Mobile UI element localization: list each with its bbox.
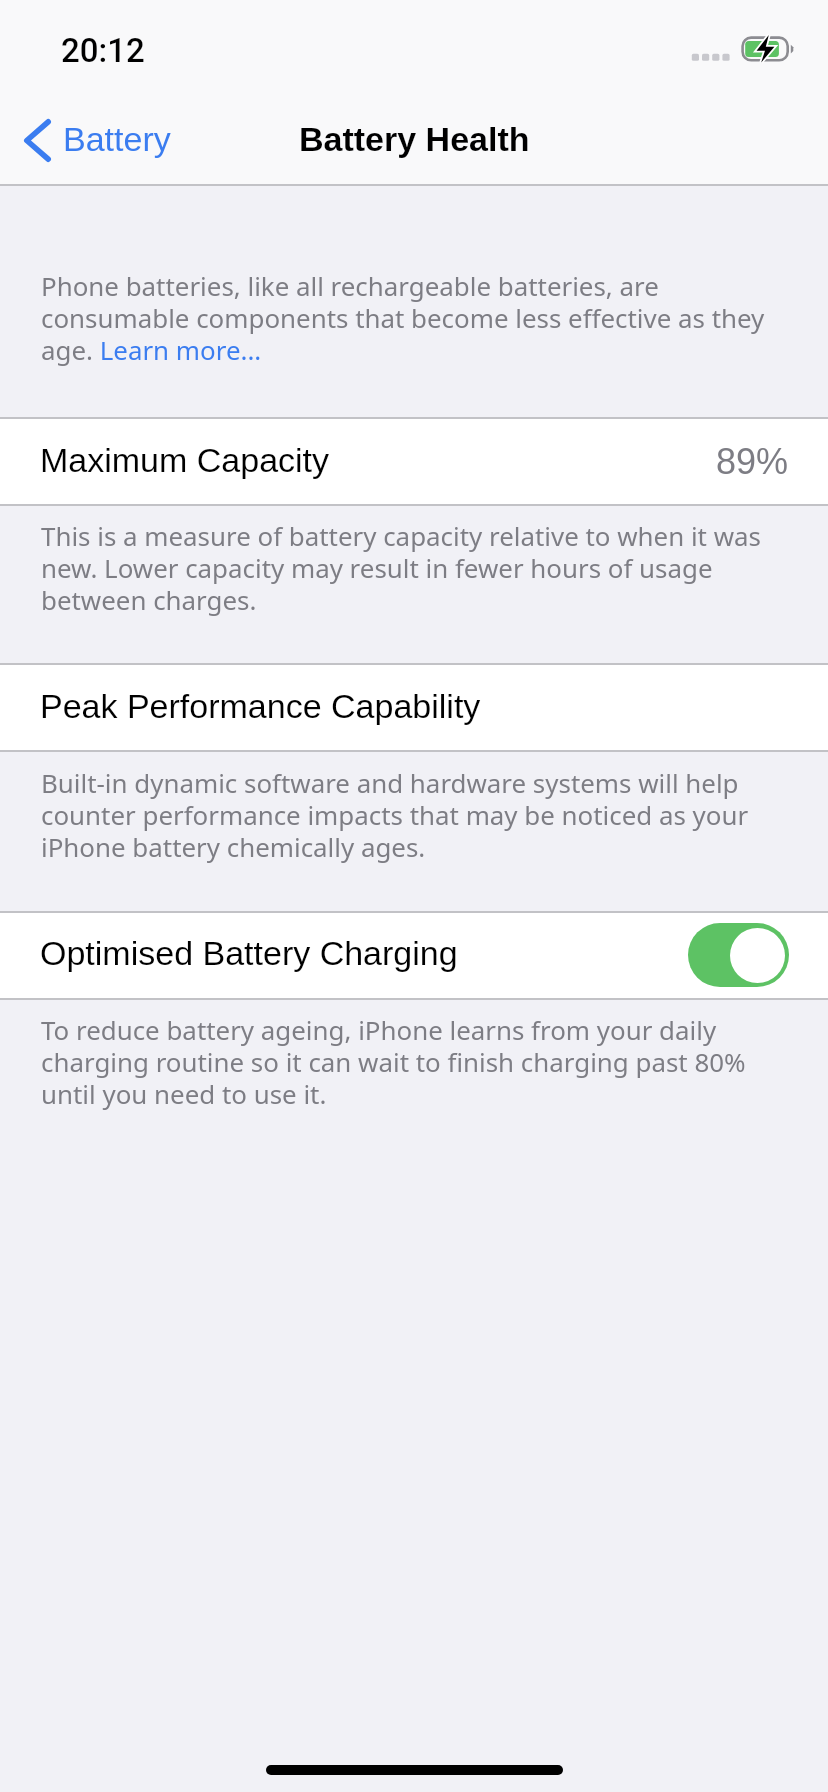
button[interactable]: Back to Battery <box>13 106 185 174</box>
staticText: This is a measure of battery capacity re… <box>41 518 787 618</box>
button[interactable]: Maximum Capacity <box>0 418 828 505</box>
staticText: To reduce battery ageing, iPhone learns … <box>41 1012 787 1112</box>
staticText: Phone batteries, like all rechargeable b… <box>41 268 787 368</box>
staticText: 89% <box>716 441 789 481</box>
staticText: Peak Performance Capability <box>40 687 481 725</box>
staticText: Optimised Battery Charging <box>40 934 458 972</box>
staticText: Maximum Capacity <box>40 441 330 479</box>
staticText: Battery Health <box>299 120 530 158</box>
staticText: Built-in dynamic software and hardware s… <box>41 765 787 865</box>
button[interactable]: Peak Performance Capability <box>0 664 828 751</box>
button[interactable]: Optimised Battery Charging <box>0 911 828 998</box>
staticText: Battery <box>63 120 171 158</box>
staticText: 20:12 <box>61 31 145 70</box>
button[interactable]: Optimised Battery Charging <box>688 923 789 987</box>
